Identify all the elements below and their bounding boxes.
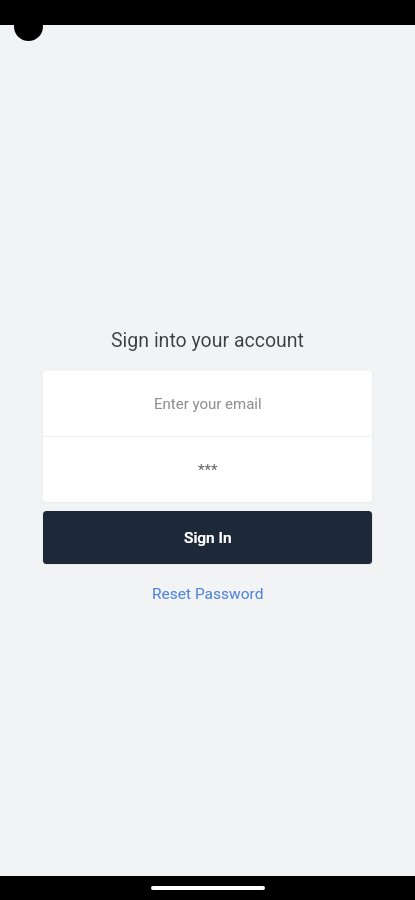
staticText: Reset Password (152, 585, 264, 603)
staticText: *** (198, 461, 218, 479)
button[interactable]: Sign In (43, 511, 372, 564)
button[interactable]: Email address field (43, 371, 372, 436)
staticText: Enter your email (154, 395, 262, 413)
staticText: Sign In (184, 529, 232, 547)
button[interactable]: Reset Password (144, 580, 272, 608)
button[interactable]: Password field (43, 437, 372, 502)
staticText: Sign into your account (111, 329, 304, 352)
